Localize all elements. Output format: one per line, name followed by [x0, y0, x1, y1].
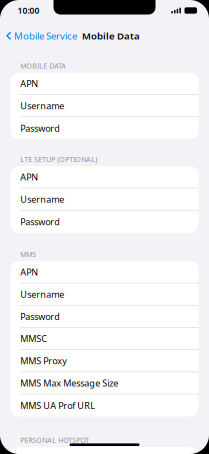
button[interactable]: Mobile Service [0, 29, 77, 42]
staticText: MMS [20, 249, 36, 259]
staticText: APN [20, 171, 38, 183]
staticText: MMS Proxy [20, 355, 67, 367]
button[interactable]: Username [10, 95, 198, 117]
button[interactable]: Password [10, 210, 198, 233]
button[interactable]: APN [10, 73, 198, 95]
staticText: MOBILE DATA [20, 61, 66, 70]
staticText: Username [20, 288, 64, 300]
staticText: Username [20, 99, 64, 112]
staticText: Password [20, 215, 60, 228]
button[interactable]: MMS UA Prof URL [10, 394, 198, 417]
staticText: APN [20, 77, 38, 90]
staticText: Mobile Service [14, 29, 77, 42]
staticText: MMS UA Prof URL [20, 399, 95, 412]
button[interactable]: APN [10, 166, 198, 188]
button[interactable]: MMS Max Message Size [10, 372, 198, 394]
staticText: MMS Max Message Size [20, 377, 118, 389]
button[interactable]: Username [10, 283, 198, 306]
staticText: Username [20, 193, 64, 205]
staticText: MMSC [20, 332, 47, 345]
staticText: LTE SETUP (OPTIONAL) [20, 154, 97, 164]
staticText: Mobile Data [82, 29, 140, 42]
staticText: PERSONAL HOTSPOT [20, 435, 89, 445]
button[interactable]: Password [10, 117, 198, 139]
button[interactable]: MMS Proxy [10, 350, 198, 372]
button[interactable]: Username [10, 188, 198, 210]
button[interactable]: Password [10, 306, 198, 328]
button[interactable]: APN [10, 261, 198, 283]
staticText: Password [20, 310, 60, 322]
button[interactable]: MMSC [10, 328, 198, 350]
staticText: APN [20, 266, 38, 278]
staticText: 10:00 [17, 5, 39, 16]
staticText: Password [20, 122, 60, 134]
